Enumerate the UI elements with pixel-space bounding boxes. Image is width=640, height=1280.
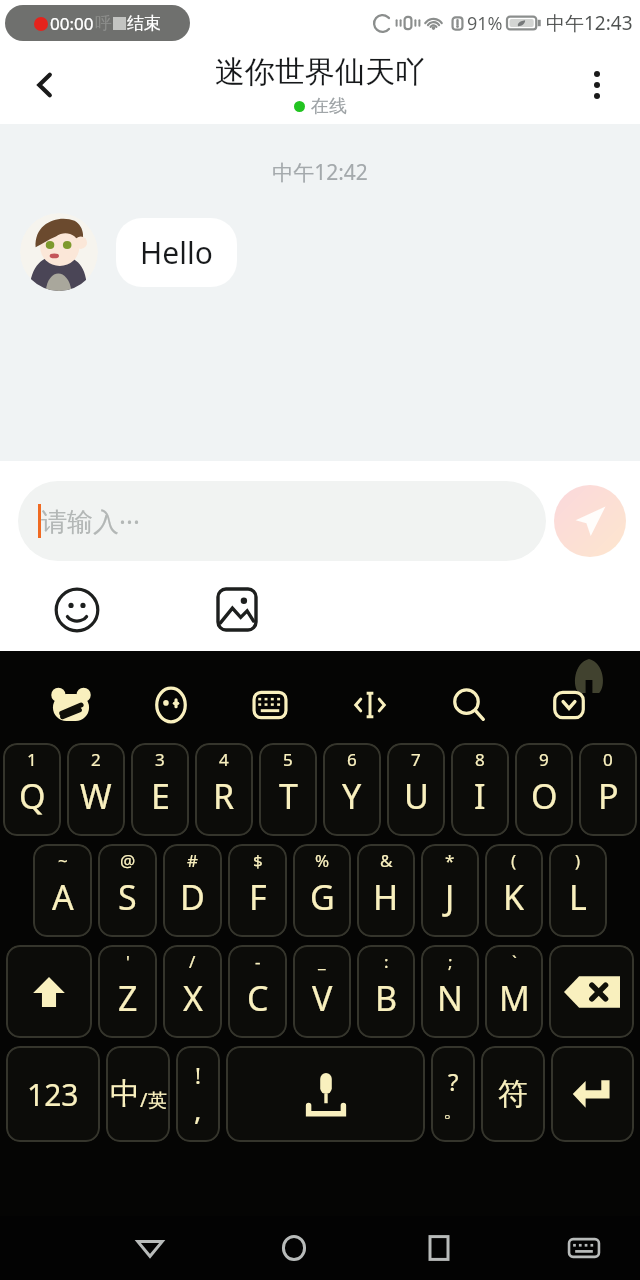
button[interactable]: Shift — [6, 945, 92, 1038]
staticText: Z — [118, 975, 138, 1021]
staticText: 9 — [539, 748, 549, 771]
button[interactable]: Back — [18, 58, 72, 112]
button[interactable]: Home — [264, 1218, 324, 1278]
button[interactable]: Switch language — [106, 1046, 170, 1142]
button[interactable]: * — [421, 844, 479, 937]
button[interactable]: 3 — [131, 743, 189, 836]
button[interactable]: ` — [485, 945, 543, 1038]
staticText: D — [180, 874, 205, 920]
staticText: G — [310, 874, 335, 920]
staticText: _ — [318, 950, 326, 973]
staticText: 中午12:42 — [0, 158, 640, 187]
button[interactable]: 9 — [515, 743, 573, 836]
staticText: E — [151, 773, 170, 819]
button[interactable]: Period — [431, 1046, 475, 1142]
button[interactable]: ~ — [33, 844, 92, 937]
button[interactable]: Send — [554, 485, 626, 557]
staticText: S — [118, 874, 137, 920]
button[interactable]: 0 — [579, 743, 637, 836]
staticText: W — [80, 773, 112, 819]
staticText: I — [474, 773, 486, 819]
staticText: ; — [448, 950, 453, 973]
button[interactable]: ( — [485, 844, 543, 937]
button[interactable]: Hello — [116, 218, 237, 287]
staticText: K — [503, 874, 525, 920]
button[interactable]: Back — [120, 1218, 180, 1278]
button[interactable]: Emoticon — [143, 677, 199, 733]
button[interactable]: More options — [570, 58, 624, 112]
button[interactable]: 2 — [67, 743, 125, 836]
button[interactable]: # — [163, 844, 222, 937]
staticText: X — [183, 975, 203, 1021]
button[interactable]: Search — [441, 677, 497, 733]
button[interactable]: % — [293, 844, 351, 937]
button[interactable]: 4 — [195, 743, 253, 836]
staticText: ` — [512, 950, 517, 973]
button[interactable]: Enter — [551, 1046, 634, 1142]
staticText: M — [499, 975, 530, 1021]
staticText: 0 — [603, 748, 613, 771]
staticText: 2 — [91, 748, 101, 771]
staticText: % — [315, 849, 330, 872]
staticText: / — [140, 1086, 148, 1113]
staticText: 请输入··· — [41, 503, 140, 539]
button[interactable]: / — [163, 945, 222, 1038]
staticText: 符 — [498, 1075, 528, 1113]
button[interactable]: - — [228, 945, 287, 1038]
staticText: 8 — [475, 748, 485, 771]
staticText: T — [279, 773, 298, 819]
button[interactable]: & — [357, 844, 415, 937]
button[interactable]: Comma — [176, 1046, 220, 1142]
staticText: F — [249, 874, 267, 920]
button[interactable]: $ — [228, 844, 287, 937]
staticText: P — [598, 773, 619, 819]
staticText: 中午12:43 — [546, 10, 633, 36]
staticText: 3 — [155, 748, 165, 771]
button[interactable]: Emoji — [50, 583, 104, 637]
button[interactable]: ) — [549, 844, 607, 937]
button[interactable]: 1 — [3, 743, 61, 836]
button[interactable]: 6 — [323, 743, 381, 836]
staticText: L — [569, 874, 587, 920]
button[interactable]: 8 — [451, 743, 509, 836]
staticText: 中 — [110, 1075, 140, 1113]
staticText: J — [445, 874, 455, 920]
staticText: 4 — [219, 748, 229, 771]
button[interactable]: Image — [210, 583, 264, 637]
button[interactable]: Voice input — [226, 1046, 425, 1142]
button[interactable]: 7 — [387, 743, 445, 836]
staticText: Q — [19, 773, 46, 819]
button[interactable]: du — [43, 677, 99, 733]
staticText: * — [445, 849, 455, 872]
button[interactable]: ; — [421, 945, 479, 1038]
button[interactable]: Cursor — [342, 677, 398, 733]
button[interactable]: 请输入··· — [18, 481, 546, 561]
staticText: 迷你世界仙天吖 — [215, 53, 425, 91]
staticText: ' — [126, 950, 130, 973]
button[interactable]: @ — [98, 844, 157, 937]
staticText: A — [52, 874, 74, 920]
staticText: ? — [448, 1065, 459, 1098]
staticText: Hello — [140, 232, 213, 273]
button[interactable]: Keyboard — [554, 1218, 614, 1278]
button[interactable]: Ongoing call 00:00 End — [5, 5, 190, 41]
button[interactable]: Keyboard layout — [242, 677, 298, 733]
staticText: 1 — [27, 748, 37, 771]
staticText: # — [187, 849, 198, 872]
button[interactable]: Symbols — [481, 1046, 545, 1142]
staticText: / — [189, 950, 196, 973]
button[interactable]: : — [357, 945, 415, 1038]
button[interactable]: Backspace — [549, 945, 634, 1038]
button[interactable]: Collapse — [541, 677, 597, 733]
staticText: 7 — [411, 748, 421, 771]
button[interactable]: _ — [293, 945, 351, 1038]
button[interactable]: Recents — [409, 1218, 469, 1278]
button[interactable]: 5 — [259, 743, 317, 836]
staticText: O — [531, 773, 558, 819]
staticText: - — [255, 950, 261, 973]
button[interactable]: ' — [98, 945, 157, 1038]
staticText: 呼 — [95, 13, 112, 34]
button[interactable]: 123 — [6, 1046, 100, 1142]
button[interactable]: Avatar — [20, 213, 98, 291]
staticText: V — [312, 975, 333, 1021]
